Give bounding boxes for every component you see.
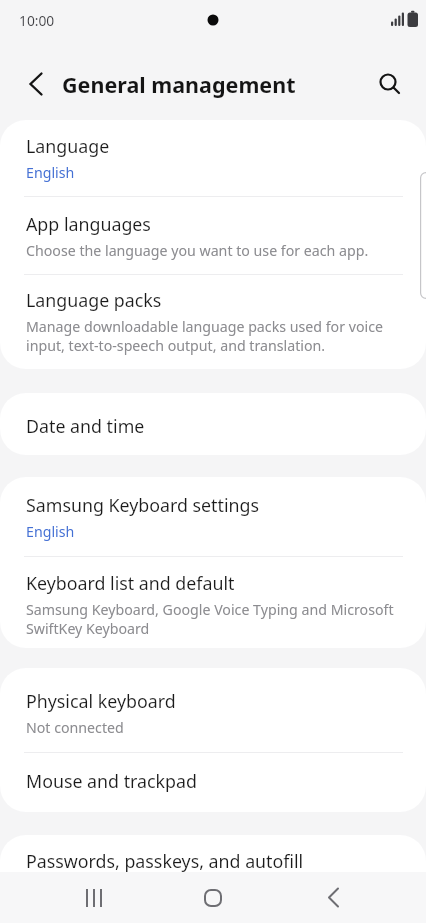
button[interactable]: Language packs	[0, 275, 426, 369]
staticText: Choose the language you want to use for …	[26, 241, 369, 260]
staticText: Samsung Keyboard settings	[26, 493, 259, 517]
staticText: Mouse and trackpad	[26, 769, 197, 793]
staticText: Not connected	[26, 718, 124, 737]
staticText: English	[26, 522, 75, 541]
staticText: Language packs	[26, 288, 162, 312]
button[interactable]: Physical keyboard	[0, 668, 426, 752]
staticText: General management	[62, 70, 296, 99]
button[interactable]: Samsung Keyboard settings	[0, 477, 426, 556]
staticText: App languages	[26, 212, 151, 236]
staticText: Keyboard list and default	[26, 571, 235, 595]
staticText: Samsung Keyboard, Google Voice Typing an…	[26, 600, 394, 638]
staticText: Physical keyboard	[26, 689, 176, 713]
button[interactable]: Date and time	[0, 393, 426, 455]
button[interactable]: Keyboard list and default	[0, 557, 426, 648]
button[interactable]	[59, 872, 129, 923]
button[interactable]	[298, 872, 368, 923]
button[interactable]	[178, 872, 248, 923]
button[interactable]: App languages	[0, 197, 426, 274]
button[interactable]: Passwords, passkeys, and autofill	[0, 835, 426, 923]
staticText: Manage downloadable language packs used …	[26, 317, 383, 355]
button[interactable]	[12, 60, 60, 108]
staticText: Language	[26, 134, 110, 158]
button[interactable]	[366, 60, 414, 108]
staticText: Date and time	[26, 414, 145, 438]
staticText: English	[26, 163, 75, 182]
button[interactable]: Mouse and trackpad	[0, 753, 426, 812]
staticText: Passwords, passkeys, and autofill	[26, 849, 304, 873]
button[interactable]: Language	[0, 120, 426, 196]
staticText: 10:00	[19, 11, 55, 30]
